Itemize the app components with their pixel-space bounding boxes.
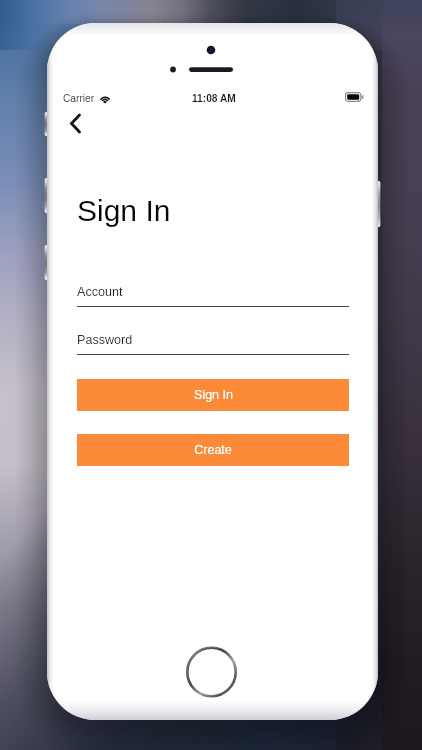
staticText: Carrier bbox=[63, 93, 95, 104]
button[interactable]: Back bbox=[58, 100, 96, 138]
staticText: Sign In bbox=[194, 388, 233, 402]
staticText: 11:08 AM bbox=[192, 93, 236, 104]
button[interactable]: Sign In bbox=[77, 379, 349, 411]
button[interactable]: Create bbox=[77, 434, 349, 466]
staticText: Create bbox=[194, 443, 232, 457]
staticText: Account bbox=[77, 285, 123, 299]
staticText: Sign In bbox=[77, 194, 171, 228]
staticText: Password bbox=[77, 333, 133, 347]
